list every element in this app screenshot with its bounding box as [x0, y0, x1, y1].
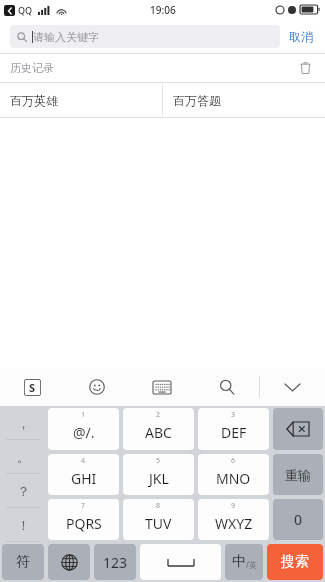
button[interactable]: 搜狗输入法: [0, 368, 64, 406]
staticText: 。: [17, 449, 30, 465]
staticText: 符: [16, 553, 30, 571]
staticText: DEF: [221, 423, 247, 442]
button[interactable]: ，: [2, 406, 44, 440]
staticText: WXYZ: [215, 514, 253, 533]
staticText: 6: [231, 456, 236, 466]
button[interactable]: 4: [48, 454, 119, 495]
button[interactable]: 5: [123, 454, 194, 495]
staticText: GHI: [71, 469, 97, 488]
staticText: 1: [81, 410, 86, 420]
staticText: 重输: [285, 467, 311, 483]
staticText: 请输入关键字: [33, 30, 99, 44]
staticText: JKL: [149, 469, 169, 488]
staticText: QQ: [18, 4, 33, 16]
staticText: 5: [156, 456, 161, 466]
staticText: 百万英雄: [10, 93, 58, 108]
button[interactable]: 7: [48, 499, 119, 540]
staticText: PQRS: [66, 514, 102, 533]
button[interactable]: 中: [225, 544, 263, 580]
button[interactable]: 8: [123, 499, 194, 540]
staticText: @/.: [73, 423, 95, 442]
staticText: 19:06: [150, 3, 176, 17]
staticText: 0: [294, 510, 303, 529]
staticText: 8: [156, 501, 161, 511]
button[interactable]: 3: [198, 408, 269, 450]
button[interactable]: 2: [123, 408, 194, 450]
button[interactable]: 删除: [273, 408, 323, 450]
button[interactable]: ！: [2, 508, 44, 542]
button[interactable]: 取消: [280, 25, 315, 48]
staticText: ？: [17, 483, 30, 499]
staticText: 取消: [289, 29, 313, 44]
staticText: TUV: [145, 514, 172, 533]
staticText: S: [29, 380, 36, 395]
button[interactable]: 123: [94, 544, 136, 580]
staticText: 历史记录: [10, 61, 54, 75]
staticText: 2: [156, 410, 161, 420]
button[interactable]: 0: [273, 499, 323, 540]
button[interactable]: 搜索: [194, 368, 259, 406]
staticText: 9: [231, 501, 236, 511]
button[interactable]: 切换语言: [48, 544, 90, 580]
button[interactable]: 1: [48, 408, 119, 450]
button[interactable]: ？: [2, 474, 44, 508]
button[interactable]: 。: [2, 440, 44, 474]
staticText: 123: [103, 553, 128, 572]
staticText: ，: [17, 415, 30, 431]
button[interactable]: 搜索: [267, 544, 323, 580]
staticText: /英: [246, 559, 257, 570]
staticText: MNO: [216, 469, 251, 488]
button[interactable]: 9: [198, 499, 269, 540]
button[interactable]: 重输: [273, 454, 323, 495]
button[interactable]: 清除历史记录: [295, 58, 315, 78]
staticText: ！: [17, 517, 30, 533]
button[interactable]: 表情: [64, 368, 129, 406]
button[interactable]: 6: [198, 454, 269, 495]
staticText: 百万答题: [173, 93, 221, 108]
staticText: 3: [231, 410, 236, 420]
staticText: 7: [81, 501, 86, 511]
staticText: 中: [232, 553, 246, 571]
staticText: ABC: [145, 423, 172, 442]
staticText: 4: [81, 456, 86, 466]
button[interactable]: 百万答题: [163, 83, 325, 117]
button[interactable]: 收起键盘: [260, 368, 325, 406]
button[interactable]: 键盘设置: [129, 368, 194, 406]
button[interactable]: 空格: [140, 544, 221, 580]
button[interactable]: 符: [2, 544, 44, 580]
button[interactable]: 百万英雄: [0, 83, 162, 117]
staticText: 搜索: [281, 553, 309, 571]
button[interactable]: 请输入关键字: [10, 25, 280, 48]
